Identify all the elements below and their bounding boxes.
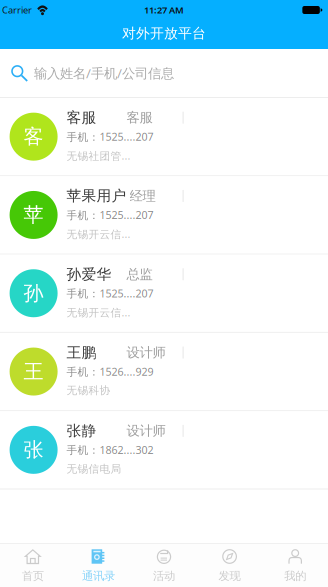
button[interactable]: 通讯录 bbox=[66, 544, 131, 587]
staticText: 苹果用户 bbox=[67, 187, 127, 205]
staticText: 客 bbox=[24, 124, 44, 149]
staticText: 王鹏 bbox=[67, 343, 97, 361]
staticText: 客服 bbox=[67, 109, 97, 127]
staticText: 总监 bbox=[127, 266, 153, 282]
staticText: 11:27 AM bbox=[144, 4, 184, 16]
button[interactable]: 我的 bbox=[262, 544, 328, 587]
staticText: Carrier bbox=[2, 4, 32, 16]
staticText: 首页 bbox=[22, 569, 44, 583]
button[interactable]: 王 bbox=[0, 333, 328, 411]
staticText: 发现 bbox=[219, 569, 241, 583]
staticText: 苹 bbox=[24, 203, 44, 227]
staticText: 设计师 bbox=[127, 423, 166, 439]
button[interactable]: 苹 bbox=[0, 176, 328, 255]
staticText: 无锡信电局 bbox=[67, 462, 122, 475]
staticText: 手机：1525....207 bbox=[67, 208, 154, 222]
button[interactable]: 输入姓名/手机/公司信息 bbox=[0, 49, 328, 97]
staticText: 手机：1525....207 bbox=[67, 130, 154, 144]
staticText: 孙 bbox=[24, 281, 44, 306]
staticText: 无锡开云信... bbox=[67, 227, 131, 241]
button[interactable]: 活动 bbox=[131, 544, 197, 587]
staticText: 我的 bbox=[284, 569, 306, 583]
staticText: 对外开放平台 bbox=[122, 25, 206, 42]
staticText: 输入姓名/手机/公司信息 bbox=[34, 64, 174, 82]
staticText: 张静 bbox=[67, 422, 97, 440]
staticText: 手机：1862....302 bbox=[67, 443, 154, 457]
staticText: 通讯录 bbox=[82, 569, 115, 583]
staticText: 手机：1525....207 bbox=[67, 286, 154, 300]
staticText: 设计师 bbox=[127, 344, 166, 361]
staticText: 孙爱华 bbox=[67, 265, 112, 283]
button[interactable]: 发现 bbox=[197, 544, 262, 587]
button[interactable]: 孙 bbox=[0, 255, 328, 333]
staticText: 王 bbox=[24, 359, 44, 384]
staticText: 活动 bbox=[153, 569, 175, 583]
staticText: 张 bbox=[24, 438, 44, 462]
button[interactable]: 首页 bbox=[0, 544, 66, 587]
staticText: 无锡开云信... bbox=[67, 305, 131, 319]
staticText: 经理 bbox=[130, 188, 156, 204]
staticText: 无锡社团管... bbox=[67, 149, 131, 163]
staticText: 客服 bbox=[127, 109, 153, 126]
button[interactable]: 客 bbox=[0, 98, 328, 176]
staticText: 无锡科协 bbox=[67, 384, 111, 397]
button[interactable]: 张 bbox=[0, 411, 328, 489]
staticText: 手机：1526....929 bbox=[67, 364, 154, 379]
